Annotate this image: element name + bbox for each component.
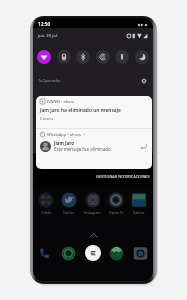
button[interactable]: Opera To: [107, 192, 125, 215]
button[interactable]: WhatsApp: [61, 246, 76, 261]
staticText: Este mensaje fue eliminado: [54, 146, 111, 152]
button[interactable]: Flashlight: [115, 50, 129, 64]
staticText: Jiam Jaro: [54, 140, 75, 146]
button[interactable]: Phone: [37, 246, 52, 261]
staticText: WhatsApp • ahora: [47, 132, 81, 137]
staticText: TuOperador: [38, 78, 61, 83]
button[interactable]: Spotify: [109, 246, 124, 261]
button[interactable]: Utilida: [37, 192, 55, 215]
staticText: IVANM • ahora: [47, 99, 75, 104]
button[interactable]: GESTIONAR NOTIFICACIONES: [94, 173, 152, 180]
button[interactable]: Instagram: [83, 192, 102, 215]
staticText: Crancs: [40, 116, 54, 122]
button[interactable]: Camera: [133, 246, 148, 261]
staticText: Twitter: [63, 210, 75, 215]
staticText: jue. 25 jul.: [38, 33, 58, 39]
staticText: GESTIONAR NOTIFICACIONES: [96, 174, 150, 179]
staticText: Jam jaro ha eliminado un mensaje: [40, 107, 121, 114]
button[interactable]: Settings: [139, 76, 148, 85]
button[interactable]: Do not disturb: [135, 50, 149, 64]
staticText: Opera To: [109, 210, 124, 215]
staticText: Instagram: [84, 210, 101, 215]
button[interactable]: Bluetooth: [76, 50, 90, 64]
button[interactable]: Twitter: [60, 192, 78, 215]
button[interactable]: All apps: [85, 245, 101, 261]
button[interactable]: IVANM • ahora: [36, 96, 152, 128]
button[interactable]: Wi-Fi: [37, 50, 51, 64]
button[interactable]: Auto-rotate: [96, 50, 110, 64]
button[interactable]: Reply: [139, 142, 148, 151]
staticText: 12:50: [38, 21, 51, 28]
button[interactable]: Battery saver: [57, 50, 71, 64]
staticText: Utilida: [41, 210, 52, 215]
button[interactable]: Galeria: [130, 192, 148, 215]
staticText: Galeria: [133, 210, 145, 215]
button[interactable]: WhatsApp • ahora: [36, 129, 152, 169]
